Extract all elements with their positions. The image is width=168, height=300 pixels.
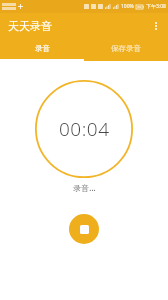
staticText: 100% bbox=[121, 3, 134, 10]
button[interactable]: More options bbox=[144, 14, 168, 38]
staticText: 录音... bbox=[73, 182, 96, 193]
staticText: 保存录音 bbox=[111, 44, 141, 53]
staticText: 录音 bbox=[35, 44, 50, 53]
staticText: 下午3:08 bbox=[146, 3, 166, 10]
staticText: 天天录音 bbox=[8, 19, 52, 33]
staticText: 00:04 bbox=[59, 116, 110, 142]
button[interactable]: Stop recording bbox=[69, 214, 99, 244]
button[interactable]: 保存录音 bbox=[84, 38, 168, 59]
button[interactable]: 录音 bbox=[0, 38, 84, 59]
